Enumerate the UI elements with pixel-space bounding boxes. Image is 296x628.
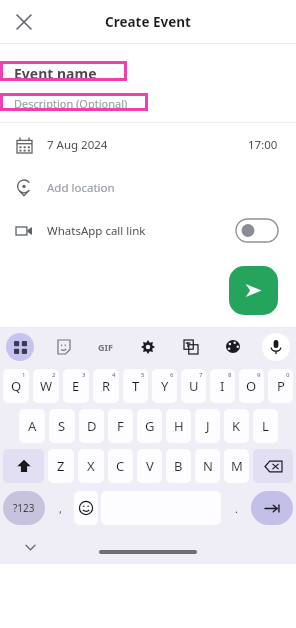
staticText: Add location [47, 180, 115, 196]
staticText: S [58, 417, 66, 435]
button[interactable]: Send [229, 266, 278, 315]
button[interactable]: Close [8, 6, 40, 38]
staticText: J [206, 417, 210, 435]
staticText: Q [11, 377, 22, 395]
staticText: X [87, 457, 95, 475]
button[interactable]: J [195, 409, 220, 443]
button[interactable]: M [224, 449, 249, 483]
button[interactable]: U [181, 369, 206, 403]
button[interactable]: WhatsApp call link toggle [236, 219, 278, 242]
button[interactable]: Description (Optional) [0, 93, 148, 111]
staticText: 1 [22, 371, 26, 379]
button[interactable]: WhatsApp call link [0, 209, 296, 252]
button[interactable]: , [47, 491, 73, 525]
staticText: T [132, 377, 140, 395]
staticText: A [28, 417, 37, 435]
staticText: U [189, 377, 199, 395]
staticText: Y [161, 377, 169, 395]
button[interactable]: E [63, 369, 89, 403]
staticText: R [102, 377, 111, 395]
staticText: N [203, 457, 213, 475]
staticText: 2 [52, 371, 56, 379]
button[interactable]: Stickers [49, 333, 77, 361]
staticText: Event name [14, 64, 97, 78]
button[interactable]: Emoji [74, 491, 98, 525]
staticText: D [87, 417, 97, 435]
button[interactable]: K [224, 409, 249, 443]
button[interactable]: D [79, 409, 104, 443]
staticText: . [235, 501, 238, 516]
button[interactable]: 7 Aug 2024 [0, 123, 296, 166]
button[interactable]: L [253, 409, 278, 443]
button[interactable]: O [239, 369, 264, 403]
staticText: K [232, 417, 241, 435]
staticText: C [116, 457, 125, 475]
staticText: 0 [286, 371, 290, 379]
button[interactable]: Translate [177, 333, 205, 361]
button[interactable]: GIF [91, 333, 119, 361]
staticText: 3 [82, 371, 86, 379]
button[interactable]: Event name [0, 61, 127, 81]
staticText: 4 [112, 371, 116, 379]
staticText: Z [57, 457, 65, 475]
button[interactable]: ?123 [3, 491, 45, 525]
staticText: 7 Aug 2024 [47, 137, 108, 153]
button[interactable]: Shift [3, 449, 44, 483]
staticText: GIF [98, 341, 113, 353]
staticText: 9 [257, 371, 261, 379]
button[interactable]: X [78, 449, 104, 483]
staticText: M [231, 457, 243, 475]
button[interactable]: A [19, 409, 45, 443]
button[interactable]: . [223, 491, 249, 525]
button[interactable]: Q [3, 369, 29, 403]
button[interactable]: G [137, 409, 162, 443]
button[interactable]: Add location [0, 166, 296, 209]
button[interactable]: R [93, 369, 119, 403]
button[interactable]: B [166, 449, 191, 483]
staticText: L [262, 417, 269, 435]
button[interactable]: Backspace [253, 449, 293, 483]
button[interactable]: P [268, 369, 293, 403]
staticText: WhatsApp call link [47, 223, 146, 239]
button[interactable]: Hide keyboard [20, 537, 40, 557]
button[interactable]: Settings [134, 333, 162, 361]
staticText: Create Event [105, 13, 191, 31]
staticText: Description (Optional) [14, 96, 128, 108]
staticText: H [174, 417, 184, 435]
button[interactable]: S [49, 409, 75, 443]
staticText: 8 [228, 371, 232, 379]
button[interactable]: Z [48, 449, 74, 483]
staticText: I [220, 377, 225, 395]
button[interactable]: Enter [251, 491, 293, 525]
button[interactable]: C [108, 449, 133, 483]
button[interactable]: Apps [6, 333, 34, 361]
staticText: , [59, 501, 62, 516]
staticText: 17:00 [248, 137, 278, 153]
staticText: B [174, 457, 183, 475]
staticText: ?123 [13, 501, 35, 515]
staticText: F [117, 417, 124, 435]
staticText: W [40, 377, 53, 395]
button[interactable]: V [137, 449, 162, 483]
staticText: 7 [199, 371, 203, 379]
button[interactable]: N [195, 449, 220, 483]
staticText: 6 [170, 371, 174, 379]
button[interactable]: Y [152, 369, 177, 403]
button[interactable]: W [33, 369, 59, 403]
button[interactable]: I [210, 369, 235, 403]
staticText: G [145, 417, 155, 435]
button[interactable]: F [108, 409, 133, 443]
button[interactable]: Themes [219, 333, 247, 361]
staticText: P [277, 377, 285, 395]
button[interactable]: H [166, 409, 191, 443]
staticText: V [146, 457, 154, 475]
staticText: O [246, 377, 257, 395]
staticText: E [72, 377, 80, 395]
button[interactable]: T [123, 369, 148, 403]
button[interactable]: Voice input [262, 333, 290, 361]
staticText: 5 [141, 371, 145, 379]
